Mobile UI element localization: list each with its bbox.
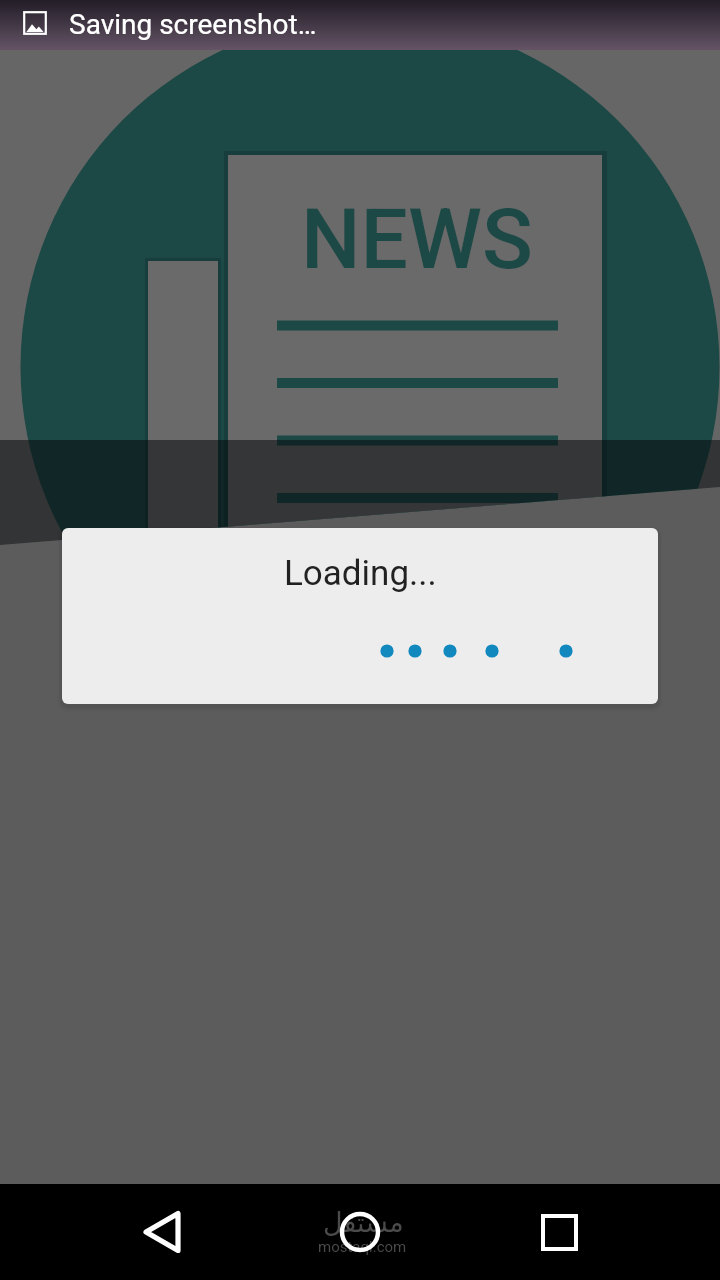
other: Screenshot [23,11,47,35]
staticText: مستقل [323,1207,404,1238]
staticText: NEWS [301,190,533,288]
staticText: mostaql.com [318,1238,407,1256]
staticText: Loading... [284,553,437,594]
button[interactable]: Recent apps [523,1196,595,1268]
staticText: Saving screenshot… [69,8,317,41]
button[interactable]: Home [324,1196,396,1268]
button[interactable]: Back [127,1196,199,1268]
